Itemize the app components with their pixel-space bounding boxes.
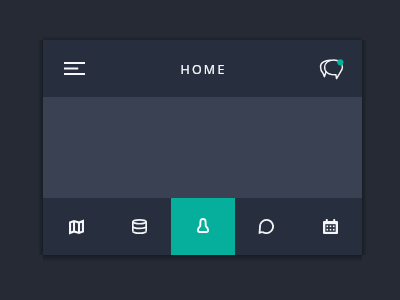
button[interactable]: Map (43, 198, 107, 255)
button[interactable]: Calendar (299, 198, 362, 255)
button[interactable]: Profile (171, 198, 235, 255)
button[interactable]: Messages (235, 198, 299, 255)
button[interactable]: Messages (300, 40, 362, 97)
button[interactable]: Data (107, 198, 171, 255)
staticText: HOME (180, 61, 227, 78)
button[interactable]: Menu (43, 40, 105, 97)
